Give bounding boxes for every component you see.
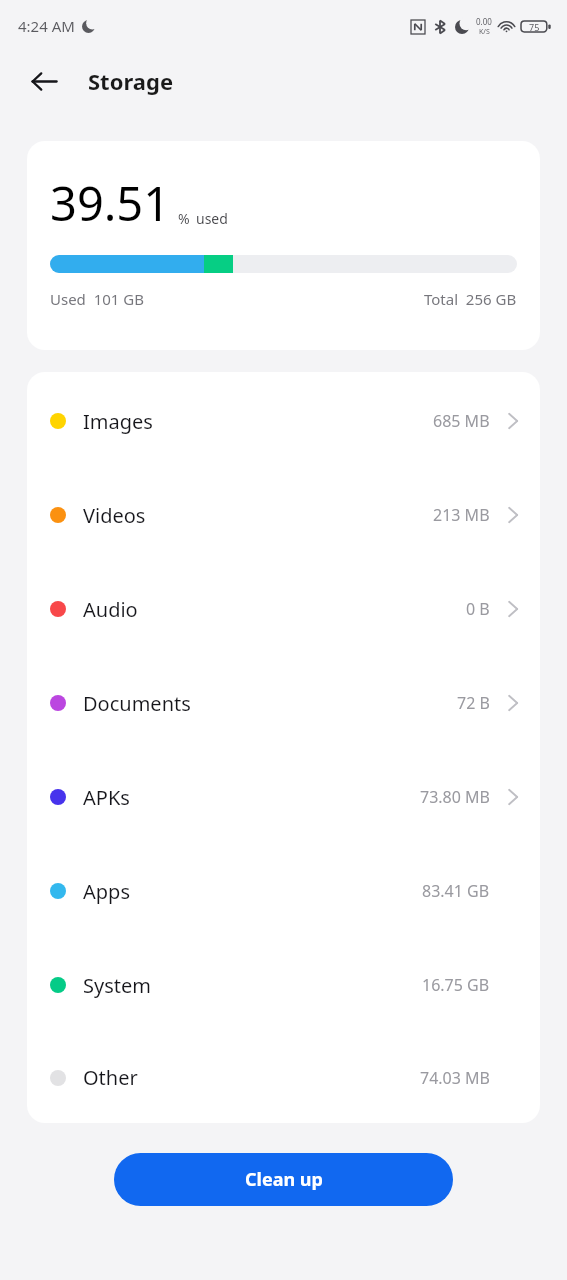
staticText: Apps bbox=[83, 878, 130, 905]
staticText: Images bbox=[83, 408, 153, 435]
staticText: 0 B bbox=[466, 598, 490, 620]
button[interactable]: System bbox=[27, 938, 540, 1032]
staticText: 213 MB bbox=[433, 504, 490, 526]
staticText: Total 256 GB bbox=[424, 289, 517, 309]
staticText: % bbox=[178, 209, 190, 228]
staticText: 685 MB bbox=[433, 410, 490, 432]
staticText: used bbox=[196, 209, 228, 228]
staticText: 4:24 AM bbox=[18, 16, 75, 36]
button[interactable]: Back bbox=[20, 57, 68, 105]
staticText: K/S bbox=[479, 27, 490, 37]
staticText: 74.03 MB bbox=[420, 1067, 490, 1089]
staticText: 72 B bbox=[457, 692, 490, 714]
staticText: 75 bbox=[529, 21, 540, 33]
button[interactable]: Clean up bbox=[114, 1153, 453, 1206]
button[interactable]: Documents bbox=[27, 656, 540, 750]
staticText: System bbox=[83, 972, 151, 999]
staticText: Videos bbox=[83, 502, 146, 529]
button[interactable]: Images bbox=[27, 374, 540, 468]
staticText: Used 101 GB bbox=[50, 289, 144, 309]
staticText: 39.51 bbox=[50, 171, 171, 235]
staticText: 16.75 GB bbox=[422, 974, 490, 996]
staticText: Other bbox=[83, 1064, 138, 1091]
button[interactable]: Other bbox=[27, 1032, 540, 1123]
staticText: 83.41 GB bbox=[422, 880, 490, 902]
staticText: 73.80 MB bbox=[420, 786, 490, 808]
button[interactable]: APKs bbox=[27, 750, 540, 844]
staticText: 0.00 bbox=[476, 16, 492, 27]
staticText: Audio bbox=[83, 596, 138, 623]
button[interactable]: Videos bbox=[27, 468, 540, 562]
staticText: Clean up bbox=[245, 1167, 323, 1192]
staticText: Documents bbox=[83, 690, 191, 717]
staticText: APKs bbox=[83, 784, 130, 811]
button[interactable]: Apps bbox=[27, 844, 540, 938]
button[interactable]: Audio bbox=[27, 562, 540, 656]
staticText: Storage bbox=[88, 66, 174, 96]
